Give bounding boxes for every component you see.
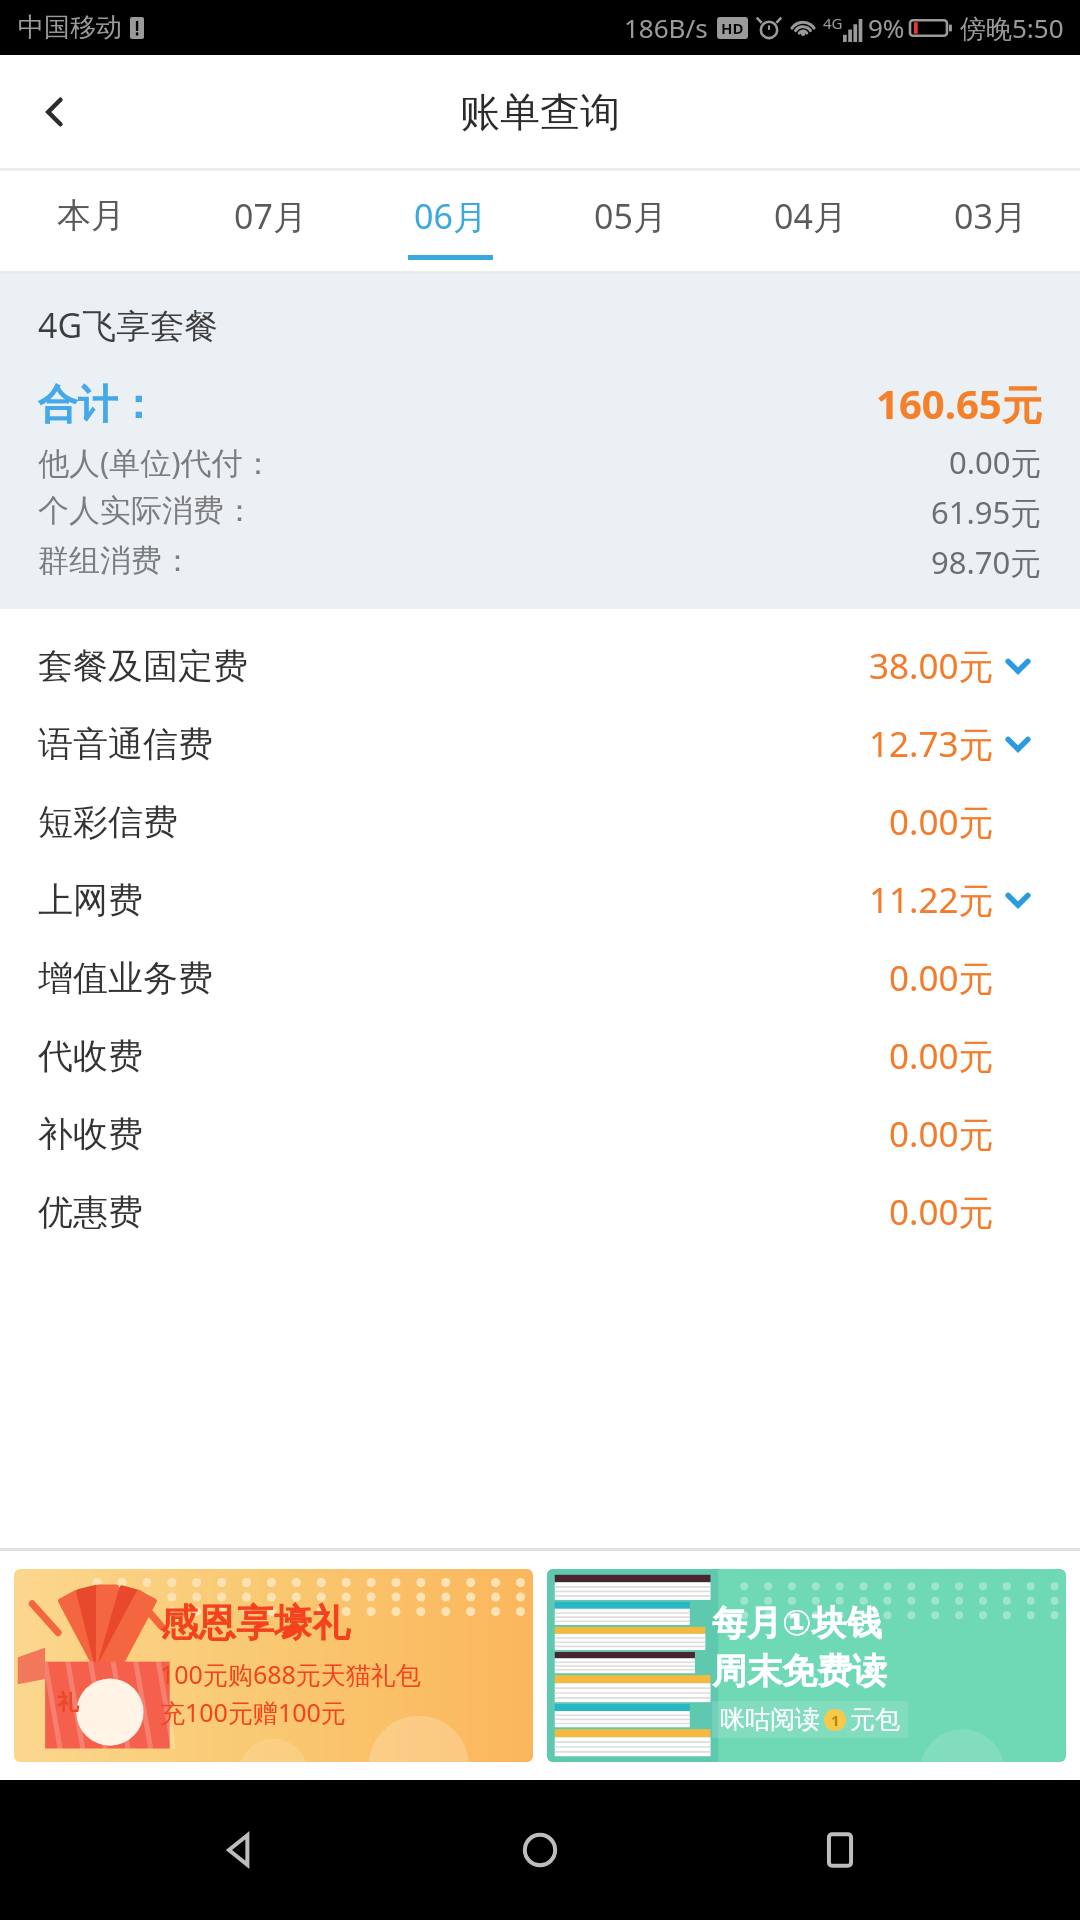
staticText: 周末免费读 — [712, 1649, 887, 1693]
staticText: 语音通信费 — [38, 722, 213, 766]
button[interactable]: Recent apps — [780, 1790, 900, 1910]
staticText: 短彩信费 — [38, 800, 178, 844]
staticText: 4G — [823, 13, 843, 33]
staticText: 优惠费 — [38, 1190, 143, 1234]
staticText: 账单查询 — [460, 87, 620, 137]
staticText: 感恩享壕礼 — [160, 1599, 350, 1647]
staticText: 元包 — [850, 1704, 900, 1735]
button[interactable]: 本月 — [0, 171, 180, 271]
staticText: 1 — [831, 1710, 840, 1730]
staticText: HD — [721, 18, 744, 38]
staticText: 98.70元 — [931, 541, 1042, 583]
staticText: 0.00元 — [889, 1032, 994, 1080]
staticText: 每月①块钱 — [712, 1601, 882, 1645]
button[interactable]: Home — [480, 1790, 600, 1910]
button[interactable]: Back — [0, 55, 110, 168]
staticText: 160.65元 — [876, 376, 1042, 431]
staticText: 07月 — [234, 193, 307, 239]
staticText: 06月 — [414, 193, 487, 239]
button[interactable]: 每月①块钱 — [547, 1569, 1066, 1762]
staticText: 9% — [868, 10, 905, 45]
staticText: 04月 — [774, 193, 847, 239]
staticText: 12.73元 — [869, 720, 994, 768]
button[interactable]: 增值业务费 — [0, 939, 1080, 1017]
staticText: 上网费 — [38, 878, 143, 922]
staticText: 他人(单位)代付： — [38, 441, 274, 483]
button[interactable]: 上网费 — [0, 861, 1080, 939]
button[interactable]: 03月 — [900, 171, 1080, 271]
staticText: 咪咕阅读 — [720, 1704, 820, 1735]
button[interactable]: 06月 — [360, 171, 540, 271]
staticText: 38.00元 — [869, 642, 994, 690]
staticText: 群组消费： — [38, 541, 193, 580]
button[interactable]: 05月 — [540, 171, 720, 271]
staticText: 03月 — [954, 193, 1027, 239]
staticText: 0.00元 — [889, 954, 994, 1002]
staticText: 增值业务费 — [38, 956, 213, 1000]
staticText: 傍晚5:50 — [960, 10, 1064, 46]
button[interactable]: 补收费 — [0, 1095, 1080, 1173]
staticText: 0.00元 — [949, 441, 1042, 483]
staticText: 充100元赠100元 — [160, 1695, 346, 1729]
staticText: 个人实际消费： — [38, 491, 255, 530]
staticText: 套餐及固定费 — [38, 644, 248, 688]
staticText: 本月 — [57, 194, 125, 237]
button[interactable]: 07月 — [180, 171, 360, 271]
staticText: 中国移动 — [18, 11, 122, 44]
staticText: 4G飞享套餐 — [38, 302, 219, 348]
staticText: 礼 — [57, 1689, 79, 1717]
button[interactable]: 套餐及固定费 — [0, 627, 1080, 705]
staticText: 补收费 — [38, 1112, 143, 1156]
button[interactable]: Back — [180, 1790, 300, 1910]
button[interactable]: 代收费 — [0, 1017, 1080, 1095]
staticText: 100元购688元天猫礼包 — [160, 1657, 421, 1691]
staticText: 11.22元 — [869, 876, 994, 924]
button[interactable]: 优惠费 — [0, 1173, 1080, 1251]
button[interactable]: 短彩信费 — [0, 783, 1080, 861]
staticText: 代收费 — [38, 1034, 143, 1078]
staticText: 0.00元 — [889, 1110, 994, 1158]
button[interactable]: 04月 — [720, 171, 900, 271]
button[interactable]: 语音通信费 — [0, 705, 1080, 783]
staticText: 合计： — [38, 379, 158, 429]
staticText: 61.95元 — [931, 491, 1042, 533]
staticText: 05月 — [594, 193, 667, 239]
staticText: 186B/s — [624, 10, 708, 45]
staticText: 0.00元 — [889, 798, 994, 846]
button[interactable]: 礼 — [14, 1569, 533, 1762]
staticText: 0.00元 — [889, 1188, 994, 1236]
